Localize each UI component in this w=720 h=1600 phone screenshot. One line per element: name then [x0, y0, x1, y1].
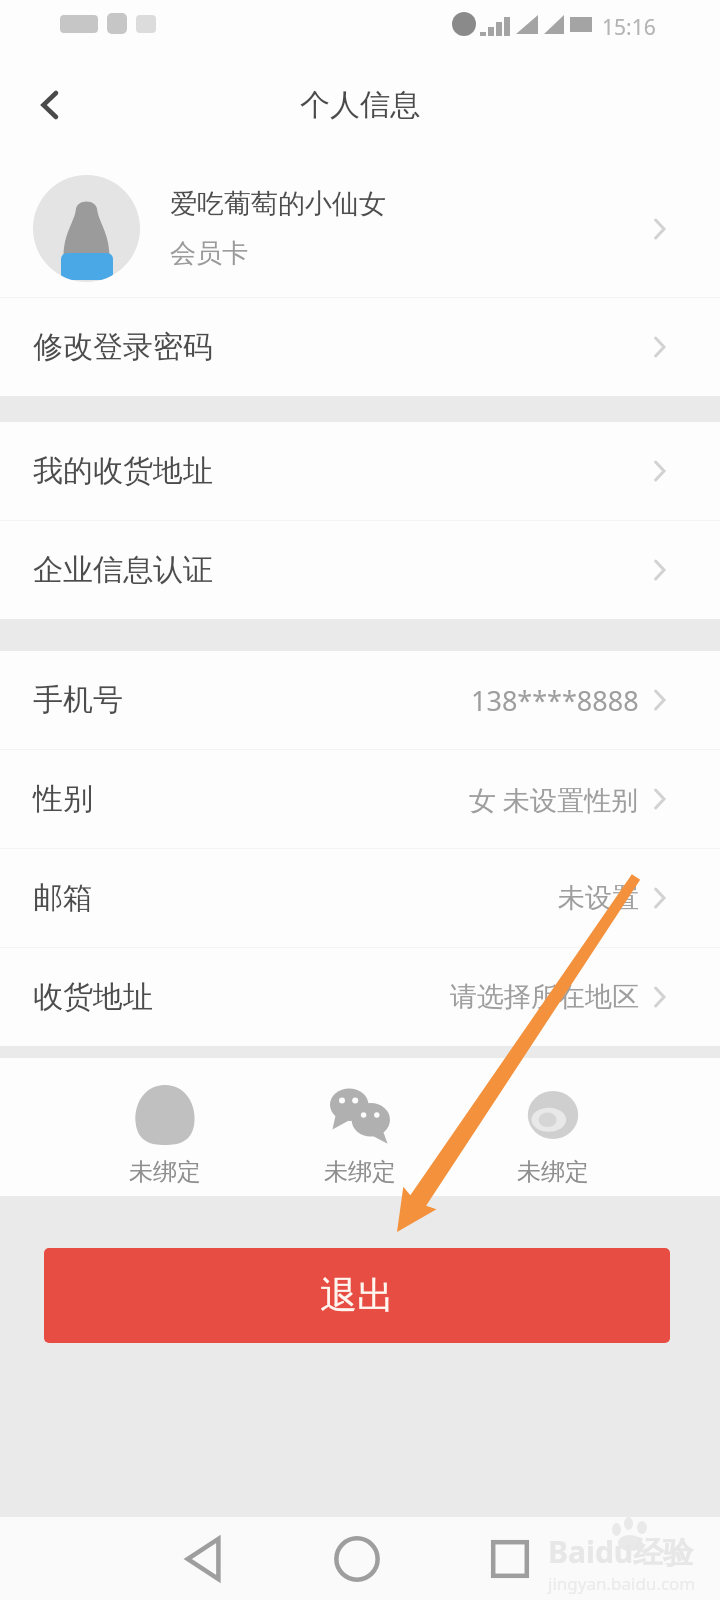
button[interactable]: 修改登录密码: [0, 298, 720, 396]
button[interactable]: 邮箱: [0, 849, 720, 947]
staticText: 收货地址: [33, 978, 153, 1016]
button[interactable]: Back: [18, 73, 82, 137]
button[interactable]: 未绑定: [493, 1085, 613, 1187]
staticText: 修改登录密码: [33, 328, 213, 366]
staticText: 会员卡: [170, 237, 248, 270]
staticText: 15:16: [602, 13, 656, 42]
staticText: 手机号: [33, 681, 123, 719]
staticText: jingyan.baidu.com: [548, 1572, 696, 1595]
button[interactable]: 性别: [0, 750, 720, 848]
staticText: 未绑定: [129, 1157, 201, 1187]
staticText: 邮箱: [33, 879, 93, 917]
staticText: 退出: [320, 1272, 394, 1319]
button[interactable]: 企业信息认证: [0, 521, 720, 619]
staticText: 女 未设置性别: [469, 781, 639, 818]
staticText: 性别: [33, 780, 93, 818]
staticText: 未绑定: [324, 1157, 396, 1187]
staticText: 未设置: [558, 881, 639, 915]
staticText: 企业信息认证: [33, 551, 213, 589]
staticText: 138****8888: [471, 682, 639, 719]
button[interactable]: 爱吃葡萄的小仙女: [0, 160, 720, 297]
button[interactable]: Back: [169, 1517, 239, 1600]
button[interactable]: 我的收货地址: [0, 422, 720, 520]
button[interactable]: Recents: [475, 1517, 545, 1600]
staticText: 个人信息: [300, 86, 420, 124]
button[interactable]: 手机号: [0, 651, 720, 749]
button[interactable]: 未绑定: [300, 1085, 420, 1187]
button[interactable]: Home: [322, 1517, 392, 1600]
staticText: Baidu经验: [548, 1531, 694, 1572]
button[interactable]: 退出: [44, 1248, 670, 1343]
button[interactable]: 未绑定: [105, 1085, 225, 1187]
staticText: 爱吃葡萄的小仙女: [170, 187, 386, 221]
button[interactable]: 收货地址: [0, 948, 720, 1046]
staticText: 请选择所在地区: [450, 980, 639, 1014]
staticText: 我的收货地址: [33, 452, 213, 490]
staticText: 未绑定: [517, 1157, 589, 1187]
